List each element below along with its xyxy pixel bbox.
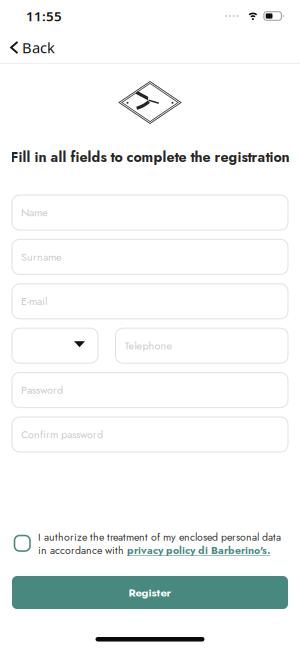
staticText: in accordance with bbox=[38, 543, 124, 558]
button[interactable]: Name bbox=[12, 195, 288, 230]
button[interactable]: Register bbox=[12, 576, 288, 609]
button[interactable]: privacy policy di Barberino's. bbox=[127, 543, 270, 558]
staticText: E-mail bbox=[21, 293, 47, 309]
staticText: privacy policy di Barberino's. bbox=[127, 543, 270, 558]
button[interactable]: Confirm password bbox=[12, 417, 288, 452]
staticText: Telephone bbox=[124, 338, 172, 353]
button[interactable]: I authorize the treatment of my personal… bbox=[14, 536, 30, 551]
staticText: Name bbox=[21, 205, 48, 220]
button[interactable]: Surname bbox=[12, 239, 288, 274]
staticText: Password bbox=[21, 382, 63, 398]
button[interactable]: Country code bbox=[12, 328, 98, 363]
staticText: 11:55 bbox=[26, 7, 62, 25]
staticText: Surname bbox=[21, 249, 62, 265]
button[interactable]: Password bbox=[12, 373, 288, 408]
staticText: Back bbox=[22, 38, 55, 57]
button[interactable]: Back bbox=[10, 38, 55, 57]
staticText: Confirm password bbox=[21, 427, 103, 442]
staticText: Fill in all fields to complete the regis… bbox=[10, 147, 289, 167]
staticText: I authorize the treatment of my enclosed… bbox=[38, 530, 281, 545]
staticText: Register bbox=[128, 584, 171, 601]
button[interactable]: Telephone bbox=[115, 328, 288, 363]
button[interactable]: E-mail bbox=[12, 284, 288, 319]
